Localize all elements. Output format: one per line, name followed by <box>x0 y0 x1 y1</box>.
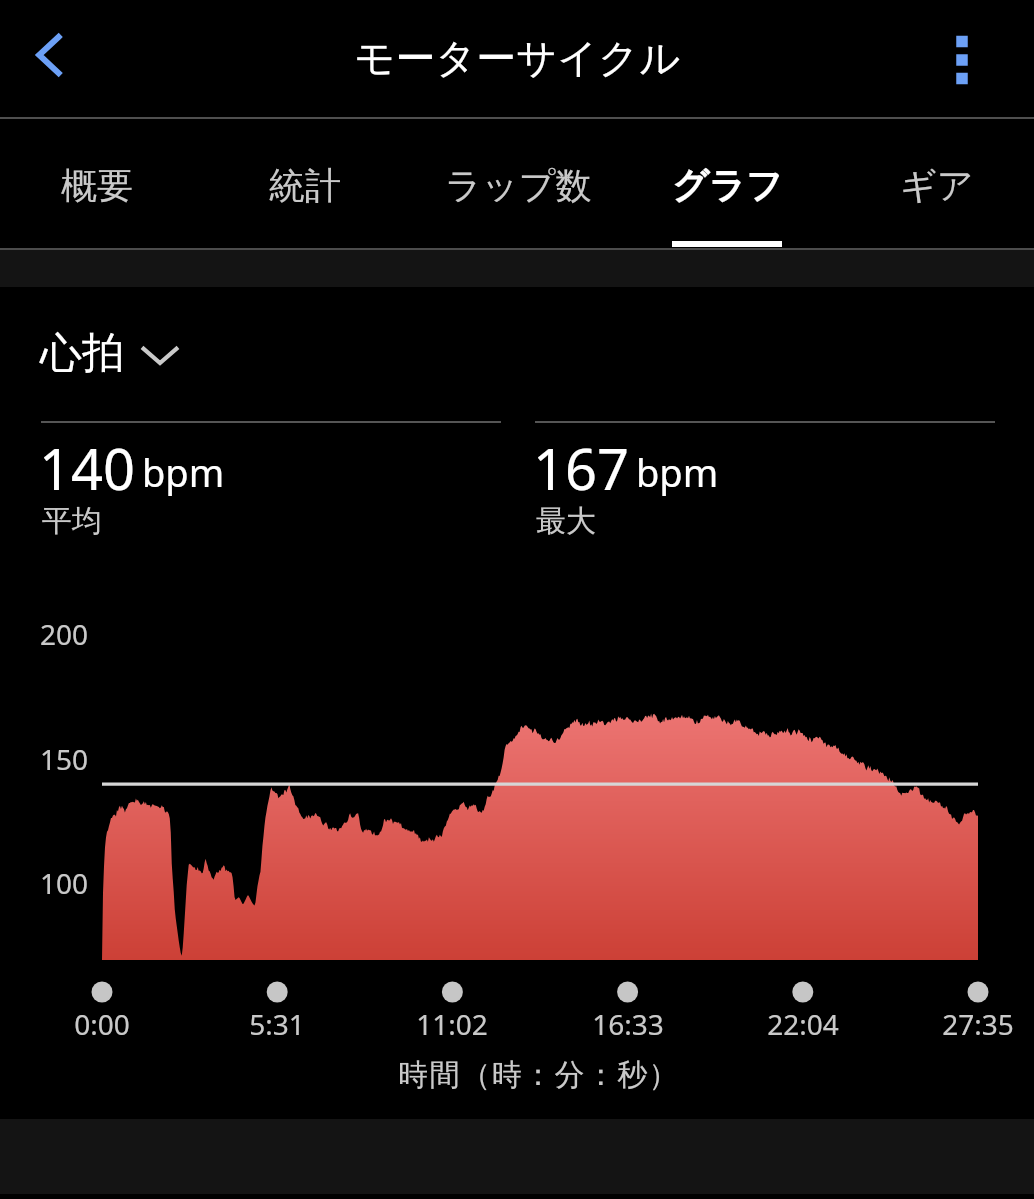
button[interactable]: ギア <box>834 116 1034 246</box>
staticText: 統計 <box>269 163 341 208</box>
button[interactable]: 統計 <box>202 116 408 246</box>
staticText: 150 <box>40 740 89 778</box>
staticText: 16:33 <box>553 1005 703 1043</box>
staticText: 11:02 <box>377 1005 527 1043</box>
staticText: モーターサイクル <box>0 33 1034 83</box>
button[interactable]: グラフ <box>624 116 830 246</box>
staticText: 100 <box>40 864 89 902</box>
staticText: 140 <box>39 430 136 506</box>
staticText: 心拍 <box>40 327 124 380</box>
staticText: 22:04 <box>728 1005 878 1043</box>
staticText: ラップ数 <box>445 163 592 208</box>
staticText: 167 <box>533 430 630 506</box>
staticText: bpm <box>636 446 719 498</box>
staticText: 時間（時：分：秒） <box>22 1056 1034 1094</box>
button[interactable]: 概要 <box>0 116 200 246</box>
staticText: 27:35 <box>903 1005 1034 1043</box>
button[interactable]: Back <box>8 15 88 95</box>
staticText: 最大 <box>536 502 596 540</box>
staticText: 概要 <box>61 163 133 208</box>
button[interactable]: 心拍 <box>40 327 180 380</box>
staticText: 200 <box>40 615 89 653</box>
staticText: 平均 <box>42 502 102 540</box>
staticText: ギア <box>900 163 974 208</box>
button[interactable]: ラップ数 <box>415 116 621 246</box>
staticText: 5:31 <box>202 1005 352 1043</box>
staticText: bpm <box>142 446 225 498</box>
staticText: 0:00 <box>27 1005 177 1043</box>
staticText: グラフ <box>672 163 783 208</box>
button[interactable]: More options <box>922 20 1002 100</box>
